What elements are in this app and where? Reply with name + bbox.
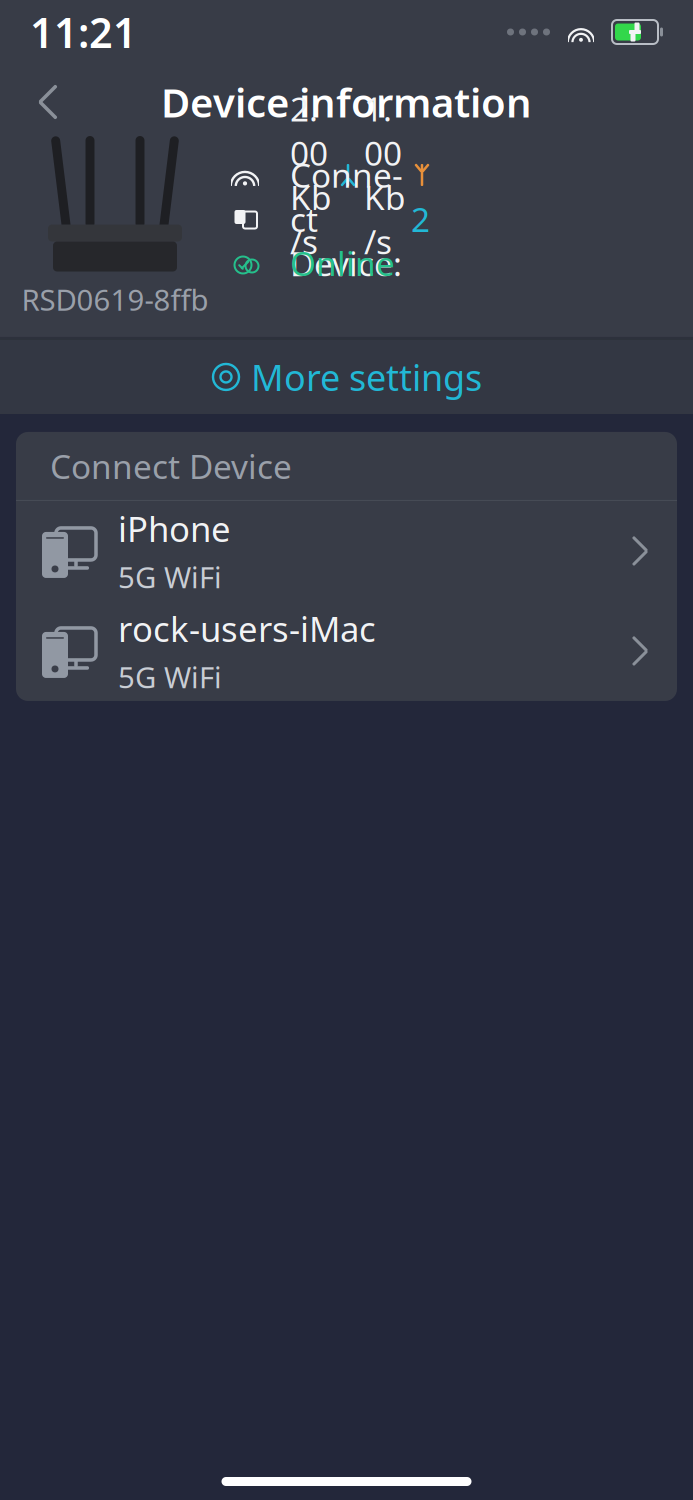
- staticText: 1.00Kb/s: [364, 86, 406, 264]
- staticText: Connect Device:: [290, 153, 411, 285]
- staticText: iPhone: [118, 505, 231, 551]
- staticText: 5G WiFi: [118, 657, 222, 696]
- staticText: 2.00Kb/s: [290, 86, 332, 264]
- button[interactable]: iPhone: [16, 501, 677, 601]
- staticText: More settings: [251, 353, 482, 401]
- staticText: 2: [411, 197, 430, 241]
- button[interactable]: Back: [16, 70, 80, 134]
- button[interactable]: More settings: [0, 340, 693, 414]
- button[interactable]: rock-users-iMac: [16, 601, 677, 701]
- staticText: RSD0619-8ffb: [21, 280, 208, 319]
- staticText: 5G WiFi: [118, 557, 222, 596]
- staticText: Online: [290, 241, 395, 285]
- staticText: 11:21: [30, 5, 137, 59]
- staticText: Connect Device: [50, 444, 292, 488]
- staticText: Device information: [161, 75, 532, 128]
- staticText: rock-users-iMac: [118, 605, 376, 651]
